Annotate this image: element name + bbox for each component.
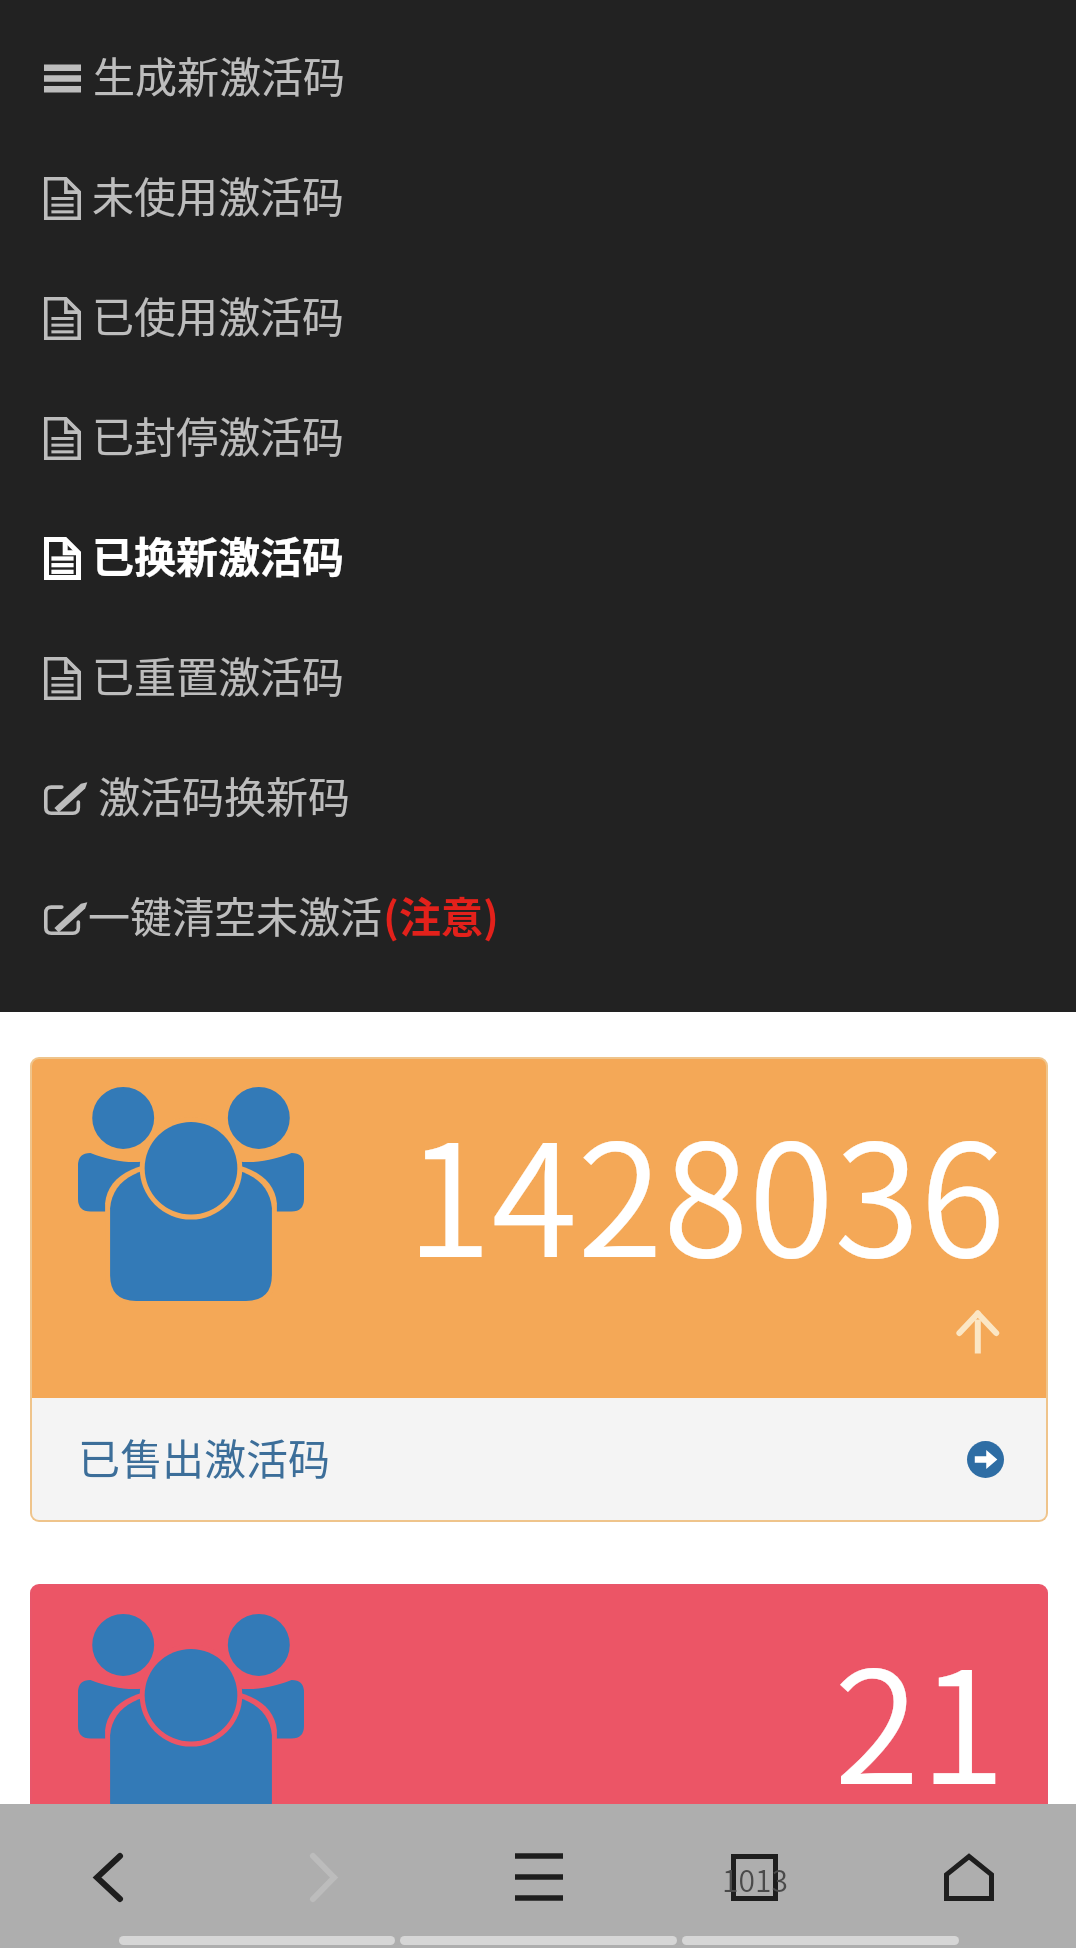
button[interactable]: 已封停激活码 bbox=[0, 378, 1076, 498]
button[interactable]: 已换新激活码 bbox=[0, 498, 1076, 618]
button[interactable]: 已使用激活码 bbox=[0, 258, 1076, 378]
button[interactable]: Menu bbox=[431, 1805, 646, 1948]
staticText: 生成新激活码 bbox=[93, 44, 346, 105]
button[interactable]: Recent apps bbox=[646, 1805, 861, 1948]
button[interactable]: 生成新激活码 bbox=[0, 18, 1076, 138]
button[interactable]: 21 bbox=[32, 1586, 1046, 1946]
button[interactable]: 已售出激活码 bbox=[32, 1398, 1046, 1520]
staticText: 1428036 bbox=[406, 1076, 1006, 1302]
button[interactable]: Back bbox=[0, 1805, 216, 1948]
button[interactable]: 未使用激活码 bbox=[0, 138, 1076, 258]
staticText: 一键清空未激活 bbox=[88, 884, 383, 945]
staticText: 未使用激活码 bbox=[92, 164, 345, 225]
staticText: 已重置激活码 bbox=[92, 644, 345, 705]
staticText: (注意) bbox=[383, 884, 499, 945]
button[interactable]: 一键清空未激活 bbox=[0, 858, 1076, 978]
button[interactable]: 1428036 bbox=[32, 1059, 1046, 1520]
staticText: 激活码换新码 bbox=[98, 764, 351, 825]
staticText: 已封停激活码 bbox=[92, 404, 345, 465]
button[interactable]: Home bbox=[861, 1805, 1076, 1948]
staticText: 未售出激活码 bbox=[78, 1922, 331, 1943]
button[interactable]: 激活码换新码 bbox=[0, 738, 1076, 858]
staticText: 已换新激活码 bbox=[92, 524, 345, 585]
button[interactable]: 已重置激活码 bbox=[0, 618, 1076, 738]
staticText: 已使用激活码 bbox=[92, 284, 345, 345]
staticText: 已售出激活码 bbox=[78, 1426, 331, 1487]
button[interactable]: 未售出激活码 bbox=[32, 1925, 1046, 1946]
staticText: 1013 bbox=[722, 1857, 788, 1900]
button[interactable]: Forward bbox=[216, 1805, 431, 1948]
staticText: 21 bbox=[834, 1603, 1006, 1829]
